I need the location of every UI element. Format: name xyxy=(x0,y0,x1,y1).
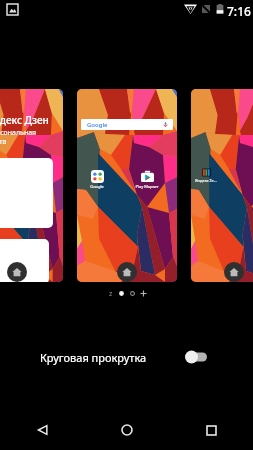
staticText: Play Маркет xyxy=(135,184,159,189)
button[interactable] xyxy=(0,158,53,228)
button[interactable]: Page 1 xyxy=(116,288,127,299)
staticText: Google xyxy=(90,184,104,189)
button[interactable]: Home xyxy=(117,262,137,282)
button[interactable]: Back xyxy=(0,410,85,450)
button[interactable]: Page 2 xyxy=(127,288,138,299)
button[interactable]: Add page xyxy=(138,288,149,299)
staticText: Круговая прокрутка xyxy=(40,350,147,365)
button[interactable]: Zen page xyxy=(105,288,116,299)
staticText: 7:16 xyxy=(227,3,251,19)
button[interactable]: Google xyxy=(81,119,173,130)
button[interactable]: Home xyxy=(85,410,169,450)
button[interactable]: Круговая прокрутка xyxy=(0,340,253,374)
button[interactable] xyxy=(0,239,49,282)
staticText: Google xyxy=(87,121,108,129)
button[interactable]: Recent apps xyxy=(169,410,253,450)
staticText: Яндекс Дзен xyxy=(0,113,49,127)
staticText: Яндекс.Те... xyxy=(195,178,218,183)
staticText: Персональная лента xyxy=(0,128,37,146)
button[interactable]: Google xyxy=(91,170,104,183)
button[interactable]: Play Маркет xyxy=(141,170,154,183)
button[interactable]: Home xyxy=(7,262,27,282)
button[interactable]: Home xyxy=(224,262,244,282)
button[interactable]: App xyxy=(201,167,212,178)
staticText: z xyxy=(109,289,113,299)
